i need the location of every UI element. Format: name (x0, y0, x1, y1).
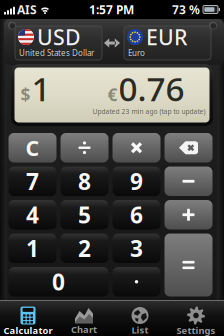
staticText: 1:57 PM (89, 1, 134, 17)
staticText: 8 (78, 166, 91, 196)
button[interactable]: 3 (112, 233, 160, 263)
button[interactable]: Calculator (0, 300, 56, 336)
button[interactable]: 1 (8, 233, 56, 263)
button[interactable]: 4 (8, 200, 56, 229)
button[interactable]: Settings (168, 300, 224, 336)
staticText: 7 (26, 166, 39, 196)
staticText: C (25, 134, 39, 162)
staticText: 1 (31, 66, 50, 110)
button[interactable]: 9 (112, 166, 160, 196)
staticText: United States Dollar (19, 48, 94, 58)
button[interactable]: Divide (60, 133, 108, 162)
button[interactable]: Chart (56, 300, 112, 336)
staticText: $ (20, 83, 30, 106)
staticText: Settings (176, 324, 215, 336)
button[interactable]: 5 (60, 200, 108, 229)
staticText: 4 (26, 200, 39, 230)
button[interactable]: EUR (124, 26, 211, 60)
staticText: EUR (146, 23, 187, 51)
button[interactable]: Minus (164, 166, 212, 196)
staticText: 5 (78, 200, 91, 230)
staticText: € (107, 83, 117, 106)
button[interactable]: Conversion display, tap to update (11, 64, 213, 126)
staticText: Euro (128, 48, 145, 58)
staticText: Updated 23 min ago (tap to update) (92, 107, 205, 116)
staticText: 73 % (172, 1, 200, 17)
staticText: 0 (52, 267, 65, 297)
staticText: 3 (130, 233, 143, 263)
button[interactable]: 7 (8, 166, 56, 196)
button[interactable]: List (112, 300, 168, 336)
button[interactable]: Multiply (112, 133, 160, 162)
button[interactable]: Equals (164, 233, 212, 296)
staticText: 0.76 (118, 66, 184, 110)
staticText: 2 (78, 233, 91, 263)
staticText: 6 (130, 200, 143, 230)
staticText: AIS (17, 1, 37, 17)
button[interactable]: 8 (60, 166, 108, 196)
staticText: 1 (26, 233, 39, 263)
button[interactable]: 2 (60, 233, 108, 263)
staticText: Calculator (3, 324, 52, 336)
button[interactable]: Clear (8, 133, 56, 162)
button[interactable]: 0 (8, 267, 108, 296)
staticText: USD (37, 23, 81, 51)
staticText: 9 (130, 166, 143, 196)
button[interactable]: Delete (164, 133, 212, 162)
button[interactable]: Plus (164, 200, 212, 229)
button[interactable]: Decimal point (112, 267, 160, 296)
button[interactable]: 6 (112, 200, 160, 229)
button[interactable]: Swap currencies (101, 26, 123, 60)
button[interactable]: USD (15, 26, 102, 60)
staticText: Chart (71, 323, 97, 336)
staticText: List (131, 324, 148, 336)
